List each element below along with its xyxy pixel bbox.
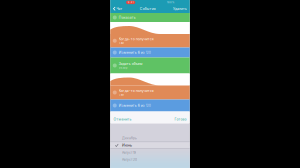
staticText: Чат <box>116 7 122 11</box>
staticText: Показать <box>119 15 136 20</box>
staticText: Август 19 <box>122 151 136 154</box>
staticText: Готово <box>174 117 186 121</box>
button[interactable]: Чат <box>112 6 124 11</box>
button[interactable]: Показать <box>110 13 190 22</box>
button[interactable]: Когда-то получится <box>110 34 190 47</box>
staticText: сам <box>119 41 124 45</box>
button[interactable]: Изменить 6 из <box>110 99 190 111</box>
staticText: обзор <box>119 66 128 69</box>
staticText: Отменить <box>113 117 131 121</box>
button[interactable]: Удалить <box>172 6 188 11</box>
button[interactable]: Готово <box>173 116 188 122</box>
staticText: 120 <box>146 50 151 55</box>
staticText: Август 20 <box>122 158 137 162</box>
staticText: 100% <box>167 1 174 4</box>
staticText: Когда-то получится <box>119 89 154 93</box>
staticText: сам <box>119 93 124 96</box>
staticText: Когда-то получится <box>119 37 154 41</box>
staticText: Изменить 6 из <box>119 50 145 55</box>
button[interactable]: Когда-то получится <box>110 85 190 99</box>
button[interactable]: Отменить <box>112 116 133 122</box>
staticText: Удалить <box>173 7 187 11</box>
staticText: События <box>140 7 156 11</box>
staticText: Декабрь <box>122 136 137 140</box>
staticText: Июнь <box>122 143 132 147</box>
staticText: 120 <box>146 103 151 108</box>
button[interactable]: Изменить 6 из <box>110 47 190 57</box>
staticText: 9:41 <box>128 1 134 4</box>
staticText: Задать объем <box>119 62 143 66</box>
staticText: Изменить 6 из <box>119 103 145 108</box>
button[interactable]: Задать объем <box>110 57 190 73</box>
